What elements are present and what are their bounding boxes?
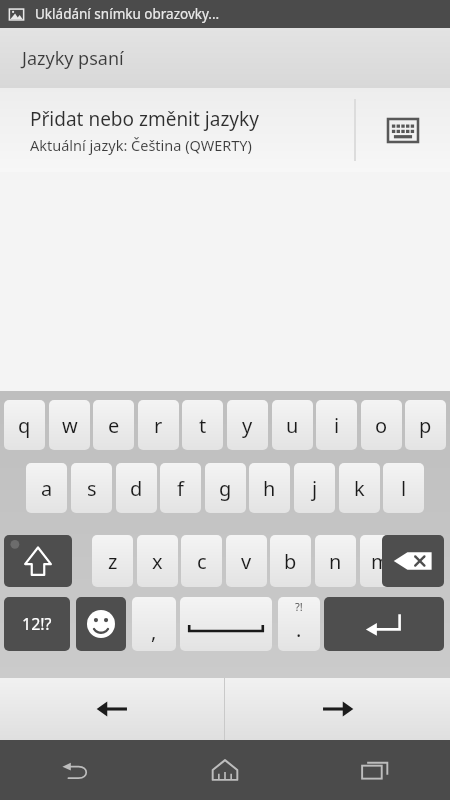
- staticText: m: [371, 548, 390, 575]
- button[interactable]: o: [361, 400, 402, 450]
- staticText: n: [329, 548, 342, 575]
- button[interactable]: f: [160, 463, 201, 513]
- button[interactable]: v: [226, 535, 267, 587]
- staticText: u: [286, 412, 299, 439]
- button[interactable]: 12!?: [4, 597, 70, 651]
- staticText: s: [87, 475, 97, 502]
- staticText: o: [375, 412, 388, 439]
- button[interactable]: Shift: [4, 535, 72, 587]
- button[interactable]: ,: [132, 597, 176, 651]
- staticText: Přidat nebo změnit jazyky: [30, 106, 259, 132]
- staticText: z: [108, 548, 118, 575]
- staticText: r: [154, 412, 163, 439]
- staticText: ?!: [295, 599, 303, 614]
- staticText: l: [401, 475, 407, 502]
- button[interactable]: s: [71, 463, 112, 513]
- button[interactable]: t: [182, 400, 223, 450]
- button[interactable]: Zpět: [0, 740, 150, 800]
- staticText: y: [242, 412, 253, 439]
- staticText: q: [18, 412, 31, 439]
- staticText: .: [296, 616, 302, 643]
- button[interactable]: n: [315, 535, 356, 587]
- staticText: h: [263, 475, 276, 502]
- staticText: c: [197, 548, 207, 575]
- button[interactable]: p: [405, 400, 446, 450]
- button[interactable]: Nastavení klávesnice: [356, 88, 450, 172]
- staticText: a: [41, 475, 53, 502]
- staticText: d: [130, 475, 143, 502]
- button[interactable]: l: [383, 463, 424, 513]
- button[interactable]: d: [116, 463, 157, 513]
- staticText: p: [419, 412, 432, 439]
- staticText: 12!?: [22, 613, 52, 635]
- staticText: Ukládání snímku obrazovky...: [35, 5, 220, 23]
- staticText: Aktuální jazyk: Čeština (QWERTY): [30, 135, 252, 155]
- button[interactable]: Předchozí: [0, 678, 224, 740]
- button[interactable]: j: [294, 463, 335, 513]
- button[interactable]: Poslední aplikace: [300, 740, 450, 800]
- button[interactable]: Backspace: [382, 535, 444, 587]
- button[interactable]: a: [26, 463, 67, 513]
- button[interactable]: k: [339, 463, 380, 513]
- button[interactable]: h: [249, 463, 290, 513]
- button[interactable]: Další: [225, 678, 450, 740]
- button[interactable]: y: [227, 400, 268, 450]
- button[interactable]: x: [137, 535, 178, 587]
- button[interactable]: r: [138, 400, 179, 450]
- button[interactable]: c: [181, 535, 222, 587]
- staticText: b: [284, 548, 297, 575]
- staticText: x: [152, 548, 163, 575]
- staticText: j: [312, 475, 318, 502]
- staticText: ,: [151, 618, 157, 645]
- button[interactable]: e: [93, 400, 134, 450]
- button[interactable]: Domů: [150, 740, 300, 800]
- button[interactable]: q: [4, 400, 45, 450]
- button[interactable]: z: [92, 535, 133, 587]
- button[interactable]: Emoji: [76, 597, 126, 651]
- staticText: k: [354, 475, 365, 502]
- button[interactable]: w: [49, 400, 90, 450]
- button[interactable]: u: [272, 400, 313, 450]
- staticText: t: [199, 412, 207, 439]
- button[interactable]: m: [360, 535, 401, 587]
- button[interactable]: Mezerník: [180, 597, 272, 651]
- staticText: v: [241, 548, 252, 575]
- button[interactable]: b: [270, 535, 311, 587]
- staticText: w: [62, 412, 78, 439]
- staticText: Jazyky psaní: [22, 46, 124, 71]
- button[interactable]: Enter: [324, 597, 444, 651]
- button[interactable]: g: [205, 463, 246, 513]
- staticText: i: [334, 412, 340, 439]
- button[interactable]: i: [316, 400, 357, 450]
- staticText: g: [219, 475, 232, 502]
- button[interactable]: ?!: [278, 597, 320, 651]
- button[interactable]: Přidat nebo změnit jazyky: [0, 88, 450, 172]
- staticText: e: [108, 412, 120, 439]
- staticText: f: [177, 475, 184, 502]
